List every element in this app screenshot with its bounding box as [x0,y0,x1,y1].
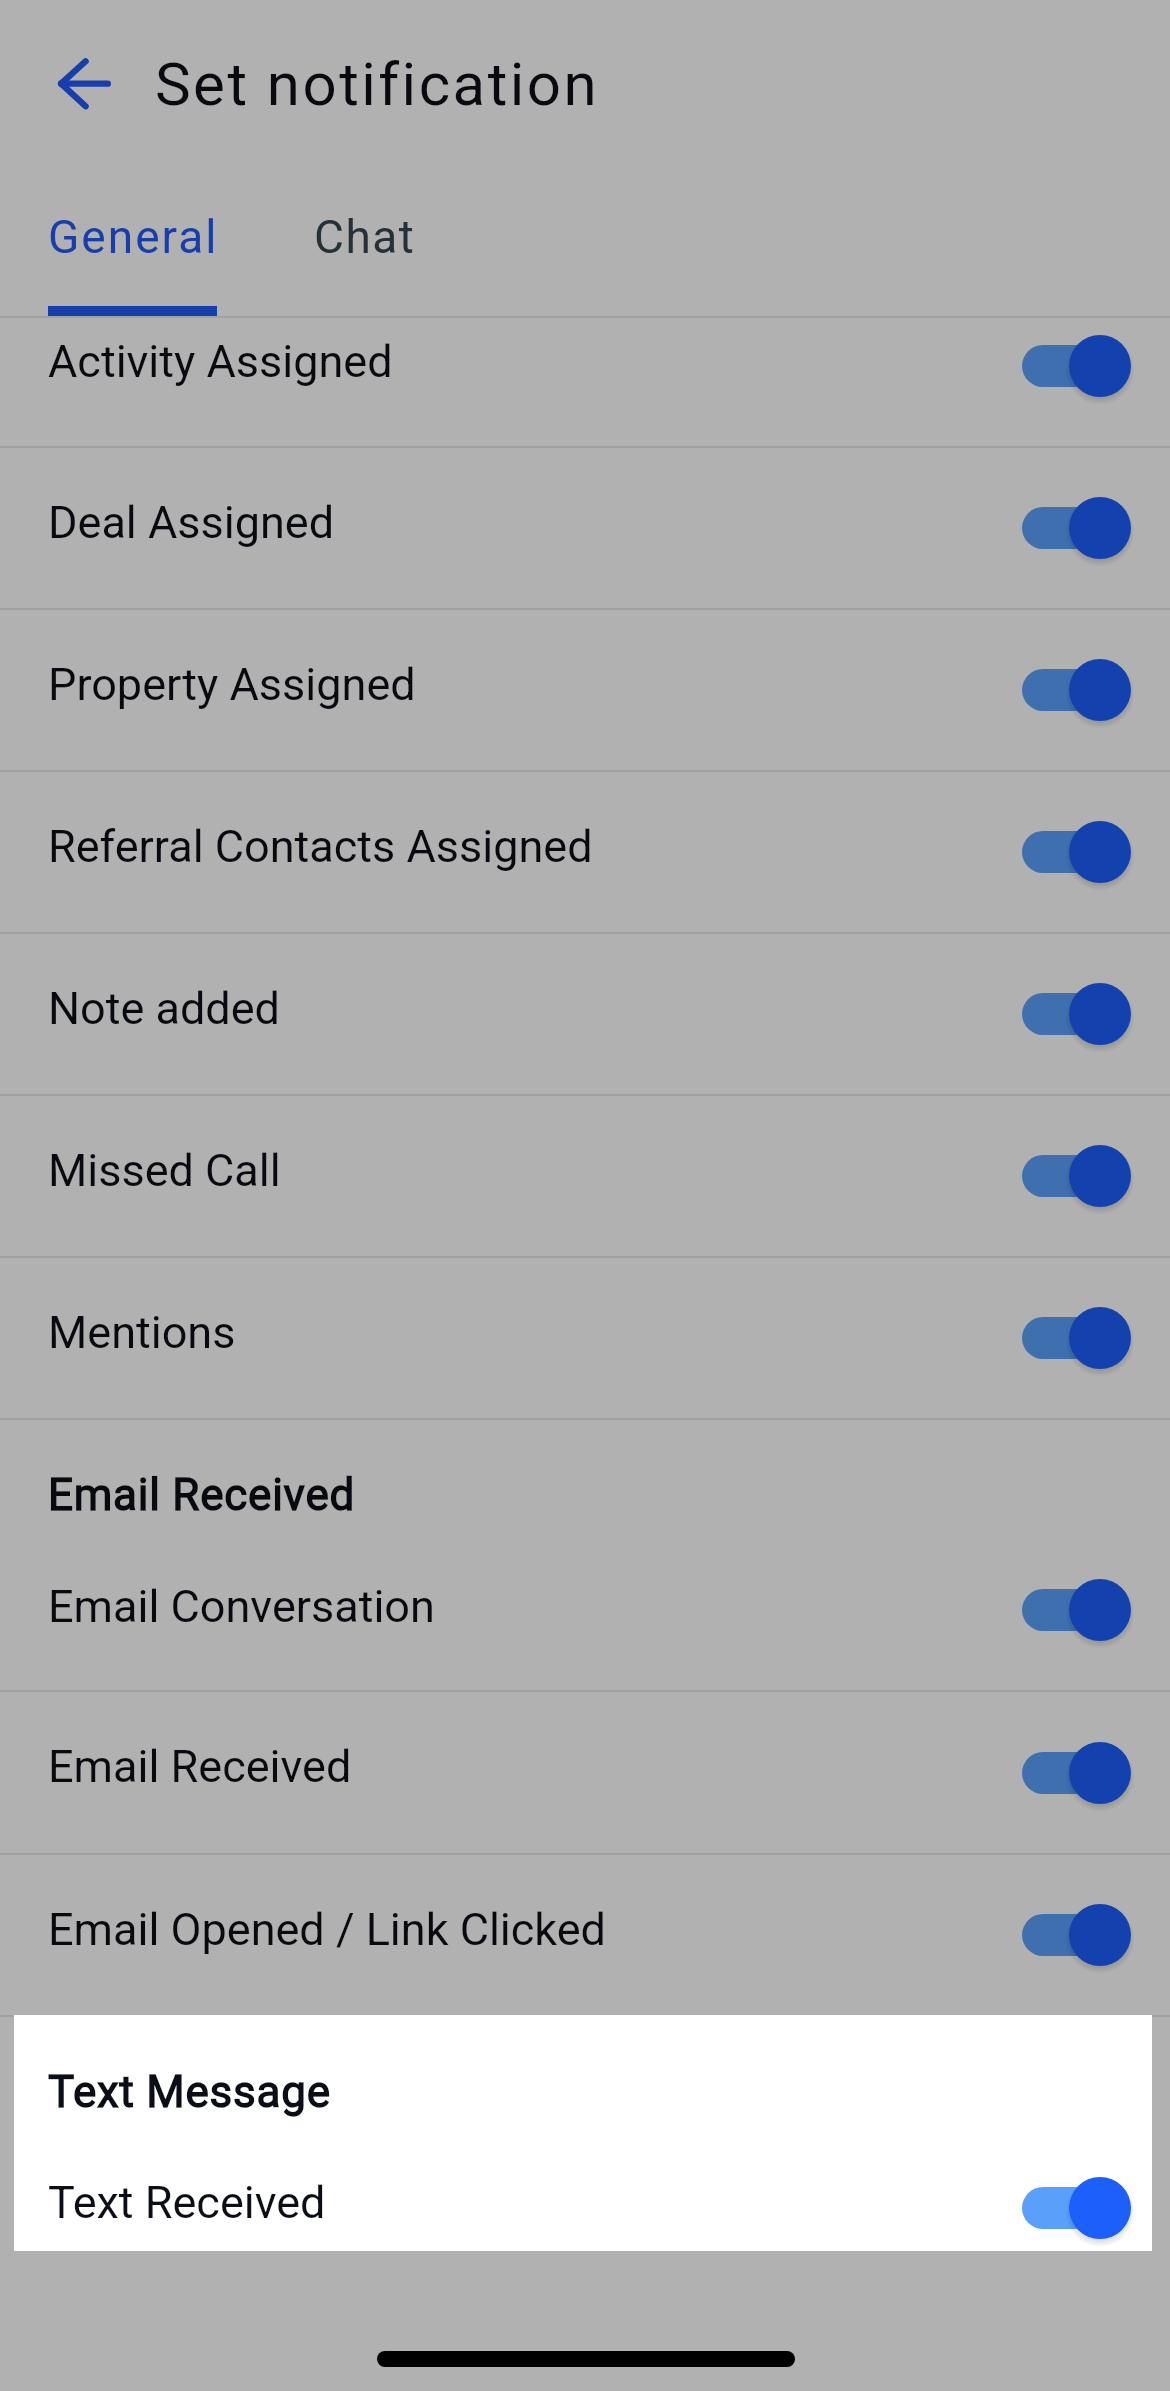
staticText: Property Assigned [48,658,1022,711]
button[interactable]: Referral Contacts Assigned [0,772,1170,932]
staticText: General [48,210,219,264]
button[interactable]: Toggle [1022,817,1131,887]
staticText: Text Message [48,2066,331,2118]
button[interactable]: Deal Assigned [0,448,1170,608]
button[interactable]: Toggle [1022,655,1131,725]
button[interactable]: Text Received [0,2125,1170,2251]
button[interactable]: Missed Call [0,1096,1170,1256]
button[interactable]: Activity Assigned [0,318,1170,447]
staticText: Text Message [48,2068,331,2120]
staticText: Referral Contacts Assigned [48,820,1022,873]
staticText: Activity Assigned [48,335,1022,388]
staticText: Note added [48,982,1022,1035]
button[interactable]: Toggle [1022,1738,1131,1808]
staticText: Email Opened / Link Clicked [48,1903,1022,1956]
button[interactable]: Email Conversation [0,1530,1170,1690]
staticText: Email Conversation [48,1580,1022,1633]
button[interactable]: Toggle [1022,2175,1131,2245]
staticText: Email Received [48,1740,1022,1793]
button[interactable]: Chat [266,190,532,317]
button[interactable]: Toggle [1022,1303,1131,1373]
staticText: Mentions [48,1306,1022,1359]
button[interactable]: Email Received [0,1692,1170,1853]
staticText: Chat [314,210,416,264]
staticText: Email Received [48,1469,356,1521]
button[interactable]: Email Opened / Link Clicked [0,1855,1170,2015]
button[interactable]: Toggle [1022,1900,1131,1970]
button[interactable]: Property Assigned [0,610,1170,770]
staticText: Set notification [155,49,600,119]
button[interactable]: Toggle [1022,2173,1131,2243]
staticText: Missed Call [48,1144,1022,1197]
staticText: Text Received [48,2178,1022,2231]
button[interactable]: Note added [0,934,1170,1094]
button[interactable]: Toggle [1022,331,1131,401]
button[interactable]: Toggle [1022,979,1131,1049]
button[interactable]: Text Received [0,2127,1170,2253]
button[interactable]: Back [46,48,126,128]
button[interactable]: Toggle [1022,1575,1131,1645]
button[interactable]: Mentions [0,1258,1170,1418]
button[interactable]: Toggle [1022,1141,1131,1211]
staticText: Deal Assigned [48,496,1022,549]
button[interactable]: Toggle [1022,493,1131,563]
button[interactable]: General [0,190,266,317]
staticText: Text Received [48,2176,1022,2229]
